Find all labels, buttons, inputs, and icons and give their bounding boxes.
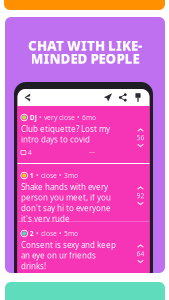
staticText: 1 bbox=[30, 171, 34, 180]
button[interactable]: DJ bbox=[17, 106, 149, 163]
staticText: Club etiquette? Lost my intro days to co… bbox=[21, 123, 110, 145]
staticText: • close • 3mo bbox=[36, 171, 78, 180]
staticText: 56 bbox=[136, 133, 144, 142]
staticText: 4 bbox=[28, 148, 32, 157]
button[interactable]: Share bbox=[115, 90, 130, 105]
staticText: Consent is sexy and keep an eye on ur fr… bbox=[21, 239, 116, 271]
button[interactable]: Pin bbox=[130, 90, 145, 105]
staticText: CHAT WITH LIKE- bbox=[28, 37, 142, 54]
button[interactable]: Back bbox=[17, 89, 34, 105]
staticText: 64 bbox=[136, 249, 144, 258]
staticText: 92 bbox=[136, 191, 144, 200]
staticText: • close • 5mo bbox=[36, 229, 78, 238]
staticText: Shake hands with every person you meet, … bbox=[21, 181, 111, 224]
staticText: 2 bbox=[30, 229, 34, 238]
button[interactable]: 2 bbox=[17, 222, 149, 278]
button[interactable]: Send bbox=[100, 90, 115, 105]
staticText: ••• bbox=[89, 149, 95, 156]
staticText: DJ bbox=[30, 113, 37, 122]
button[interactable]: 1 bbox=[17, 164, 149, 221]
staticText: MINDED PEOPLE bbox=[30, 50, 139, 67]
staticText: • very close • 6mo bbox=[39, 113, 96, 122]
